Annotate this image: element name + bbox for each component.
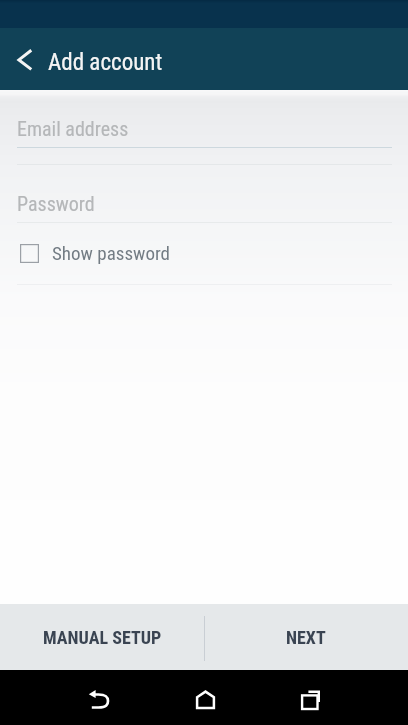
button[interactable] [0,183,408,222]
button[interactable] [0,108,408,148]
staticText: Email address [17,117,129,140]
staticText: NEXT [286,627,326,648]
button[interactable] [0,232,408,284]
button[interactable]: MANUAL SETUP [0,604,204,670]
staticText: Show password [52,242,170,264]
button[interactable]: Home [178,672,232,725]
staticText: Password [17,192,95,215]
button[interactable]: NEXT [204,604,408,670]
button[interactable]: Navigate up [0,30,48,91]
button[interactable]: Recent apps [283,672,337,725]
button[interactable]: Back [72,672,126,725]
staticText: Add account [48,49,163,76]
staticText: MANUAL SETUP [43,627,162,648]
